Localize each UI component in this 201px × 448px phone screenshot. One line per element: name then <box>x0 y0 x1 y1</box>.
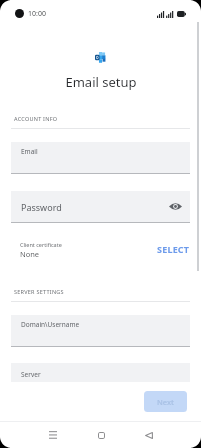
button[interactable]: Back <box>136 422 162 448</box>
button[interactable]: Server <box>11 363 190 382</box>
staticText: Next <box>157 397 174 407</box>
staticText: SERVER SETTINGS <box>14 288 64 295</box>
button[interactable]: Domain\Username <box>11 315 190 347</box>
staticText: 10:00 <box>28 9 46 19</box>
staticText: Email <box>21 147 38 156</box>
staticText: Server <box>21 370 41 379</box>
staticText: Password <box>21 201 62 213</box>
button[interactable]: Next <box>144 391 187 412</box>
staticText: None <box>20 249 40 259</box>
button[interactable]: Client certificate <box>11 237 190 263</box>
button[interactable]: SELECT <box>155 243 190 258</box>
button[interactable]: Password <box>11 191 190 223</box>
button[interactable]: Email <box>11 142 190 174</box>
button[interactable]: Recent apps <box>40 422 66 448</box>
button[interactable]: Home <box>88 422 114 448</box>
staticText: Email setup <box>65 73 137 91</box>
staticText: Domain\Username <box>21 320 80 329</box>
staticText: SELECT <box>157 243 190 255</box>
staticText: ACCOUNT INFO <box>14 115 58 122</box>
button[interactable]: Show password <box>168 199 183 214</box>
staticText: Client certificate <box>20 241 62 248</box>
